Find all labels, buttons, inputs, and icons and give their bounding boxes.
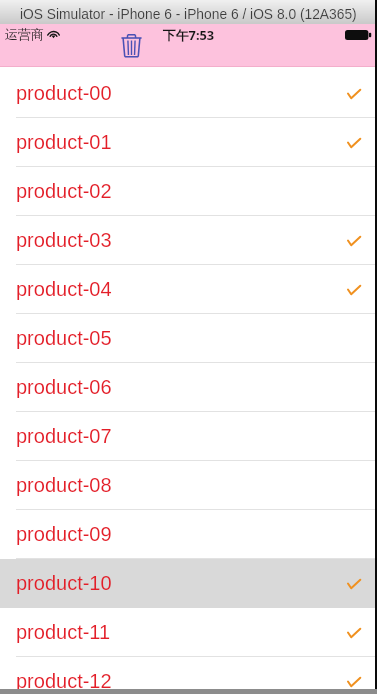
button[interactable]: product-00 [0, 69, 377, 118]
staticText: product-04 [16, 278, 112, 300]
button[interactable]: product-11 [0, 608, 377, 657]
button[interactable]: product-07 [0, 412, 377, 461]
button[interactable]: product-08 [0, 461, 377, 510]
button[interactable]: product-06 [0, 363, 377, 412]
staticText: 下午7:53 [163, 26, 215, 43]
staticText: product-05 [16, 327, 112, 349]
staticText: product-12 [16, 670, 112, 692]
button[interactable]: product-03 [0, 216, 377, 265]
staticText: 运营商 [5, 26, 44, 42]
staticText: product-00 [16, 82, 112, 104]
staticText: product-02 [16, 180, 112, 202]
staticText: product-11 [16, 621, 111, 643]
staticText: product-03 [16, 229, 112, 251]
button[interactable]: Delete [121, 33, 142, 58]
staticText: product-08 [16, 474, 112, 496]
button[interactable]: product-05 [0, 314, 377, 363]
staticText: product-07 [16, 425, 112, 447]
button[interactable]: product-02 [0, 167, 377, 216]
staticText: product-06 [16, 376, 112, 398]
staticText: product-01 [16, 131, 112, 153]
button[interactable]: product-12 [0, 657, 377, 694]
staticText: product-10 [16, 572, 112, 594]
button[interactable]: product-10 [0, 559, 377, 608]
button[interactable]: product-01 [0, 118, 377, 167]
button[interactable]: product-09 [0, 510, 377, 559]
staticText: product-09 [16, 523, 112, 545]
button[interactable]: product-04 [0, 265, 377, 314]
staticText: iOS Simulator - iPhone 6 - iPhone 6 / iO… [20, 7, 357, 22]
